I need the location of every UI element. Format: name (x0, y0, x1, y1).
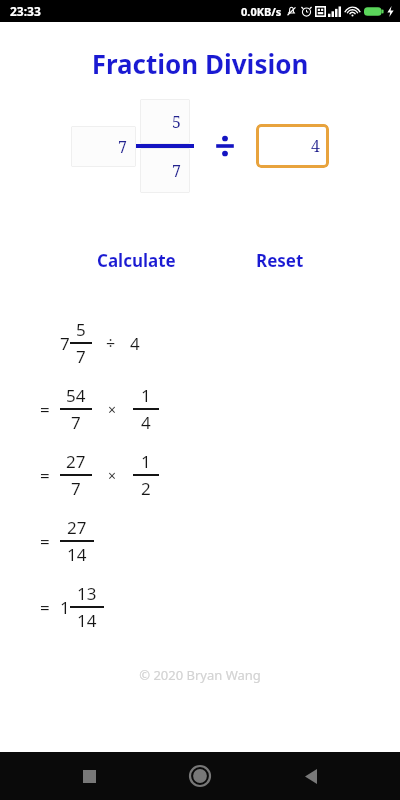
button[interactable]: Back (289, 754, 333, 798)
button[interactable]: Home (178, 754, 222, 798)
staticText: = (40, 530, 60, 553)
staticText: 5 (76, 318, 86, 341)
staticText: 27 (67, 516, 87, 539)
staticText: 1 (60, 596, 70, 619)
staticText: × (108, 400, 117, 419)
button[interactable]: 7 (71, 126, 136, 167)
staticText: 7 (118, 136, 127, 158)
staticText: 13 (77, 582, 97, 605)
staticText: 14 (67, 543, 87, 566)
staticText: 7 (172, 160, 181, 182)
staticText: 5 (172, 111, 181, 133)
staticText: = (40, 596, 60, 619)
staticText: ÷ (106, 332, 116, 354)
staticText: 4 (130, 332, 140, 355)
button[interactable]: 7 (140, 148, 190, 193)
button[interactable]: 5 (140, 99, 190, 144)
staticText: 27 (66, 450, 86, 473)
staticText: Fraction Division (0, 46, 400, 81)
staticText: 7 (76, 345, 86, 368)
staticText: 14 (77, 609, 97, 632)
staticText: 4 (141, 411, 151, 434)
staticText: 0.0KB/s (241, 4, 282, 19)
button[interactable]: Recent apps (67, 754, 111, 798)
staticText: 2 (141, 477, 151, 500)
staticText: × (108, 466, 117, 485)
staticText: 23:33 (10, 3, 41, 19)
staticText: 54 (66, 384, 86, 407)
staticText: 7 (60, 332, 70, 355)
staticText: 7 (71, 477, 81, 500)
button[interactable]: Calculate (79, 241, 194, 280)
staticText: 1 (141, 384, 151, 407)
staticText: Calculate (97, 249, 176, 272)
staticText: 1 (141, 450, 151, 473)
button[interactable]: Reset (238, 241, 322, 280)
staticText: 7 (71, 411, 81, 434)
button[interactable]: 4 (256, 124, 329, 168)
staticText: Reset (256, 249, 304, 272)
staticText: = (40, 464, 60, 487)
staticText: 4 (311, 135, 320, 157)
staticText: © 2020 Bryan Wang (0, 666, 400, 684)
staticText: = (40, 398, 60, 421)
